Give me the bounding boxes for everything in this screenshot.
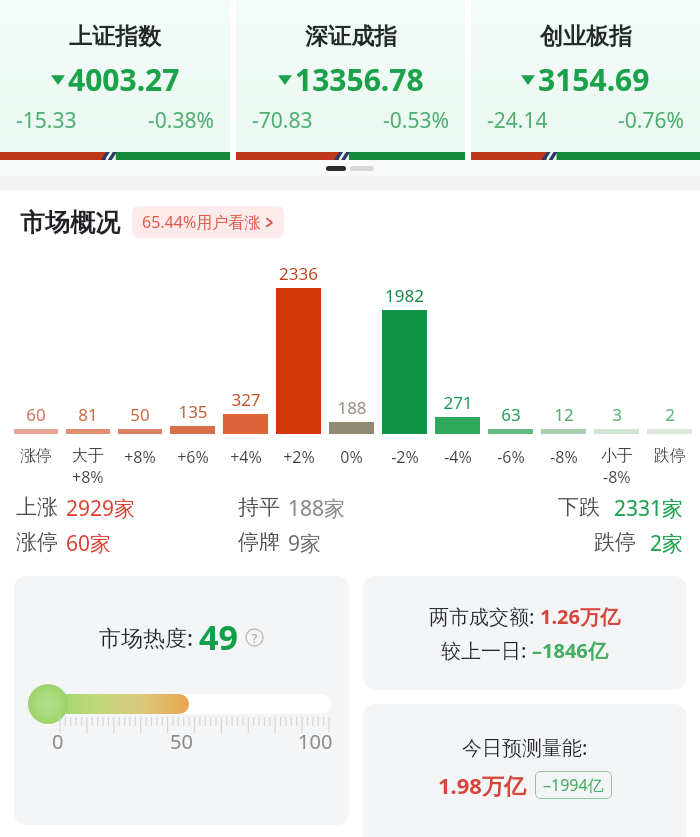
staticText: 100 (298, 728, 333, 755)
staticText: 创业板指 (540, 22, 632, 51)
staticText: 188 (337, 396, 367, 419)
staticText: +8% (72, 466, 104, 488)
staticText: -8% (550, 446, 578, 468)
staticText: -2% (391, 446, 419, 468)
staticText: 停牌 (238, 529, 280, 555)
button[interactable]: 65.44%用户看涨 (132, 206, 284, 238)
staticText: 跌停 (594, 529, 636, 555)
staticText: -0.76% (618, 106, 684, 135)
staticText: +2% (283, 446, 315, 468)
staticText: –1846亿 (532, 637, 608, 664)
staticText: 9家 (288, 529, 322, 558)
staticText: -8% (603, 466, 631, 488)
staticText: 271 (443, 391, 473, 414)
staticText: 上证指数 (69, 22, 161, 51)
staticText: 跌停 (654, 446, 686, 466)
staticText: +4% (230, 446, 262, 468)
staticText: 13356.78 (295, 59, 424, 100)
staticText: 上涨 (16, 494, 58, 520)
staticText: 0% (340, 446, 363, 468)
button[interactable]: Help about market heat (245, 628, 264, 647)
staticText: 4003.27 (68, 59, 180, 100)
staticText: 较上一日: (441, 637, 532, 664)
staticText: –1994亿 (543, 774, 604, 796)
staticText: +6% (177, 446, 209, 468)
staticText: 0 (52, 728, 64, 755)
staticText: 2 (665, 403, 675, 426)
staticText: 市场概况 (20, 207, 120, 238)
staticText: -15.33 (16, 106, 77, 135)
staticText: -24.14 (487, 106, 548, 135)
staticText: -4% (444, 446, 472, 468)
staticText: 2331家 (614, 494, 684, 523)
staticText: 1982 (385, 284, 424, 307)
button[interactable]: 市场热度: (14, 576, 349, 825)
staticText: 50 (130, 403, 150, 426)
staticText: 65.44%用户看涨 (142, 211, 261, 233)
staticText: 深证成指 (305, 22, 397, 51)
staticText: 60 (26, 403, 46, 426)
staticText: 12 (554, 403, 574, 426)
staticText: 3 (612, 403, 622, 426)
staticText: 188家 (288, 494, 346, 523)
staticText: 持平 (238, 494, 280, 520)
staticText: 涨停 (16, 529, 58, 555)
staticText: 市场热度: (99, 622, 199, 652)
staticText: 今日预测量能: (462, 734, 588, 761)
button[interactable]: 上证指数 (0, 0, 230, 160)
staticText: -0.38% (148, 106, 214, 135)
staticText: 135 (178, 400, 208, 423)
staticText: 49 (199, 614, 238, 660)
staticText: -70.83 (252, 106, 313, 135)
button[interactable]: 今日预测量能: (363, 704, 686, 837)
staticText: 大于 (72, 446, 104, 466)
staticText: 60家 (66, 529, 112, 558)
staticText: 327 (231, 388, 261, 411)
staticText: 1.26万亿 (540, 603, 620, 630)
staticText: +8% (124, 446, 156, 468)
staticText: 两市成交额: (429, 603, 540, 630)
staticText: 2家 (650, 529, 684, 558)
staticText: 63 (501, 403, 521, 426)
button[interactable]: 两市成交额: (363, 576, 686, 690)
button[interactable]: 创业板指 (471, 0, 700, 160)
staticText: 2336 (279, 262, 318, 285)
staticText: 81 (78, 403, 98, 426)
staticText: 下跌 (558, 494, 600, 520)
staticText: 1.98万亿 (438, 770, 526, 800)
staticText: 50 (170, 728, 193, 755)
button[interactable]: 深证成指 (236, 0, 465, 160)
staticText: 涨停 (20, 446, 52, 466)
staticText: 2929家 (66, 494, 136, 523)
staticText: ? (252, 630, 258, 646)
staticText: -0.53% (383, 106, 449, 135)
staticText: 3154.69 (538, 59, 650, 100)
staticText: -6% (497, 446, 525, 468)
staticText: 小于 (601, 446, 633, 466)
